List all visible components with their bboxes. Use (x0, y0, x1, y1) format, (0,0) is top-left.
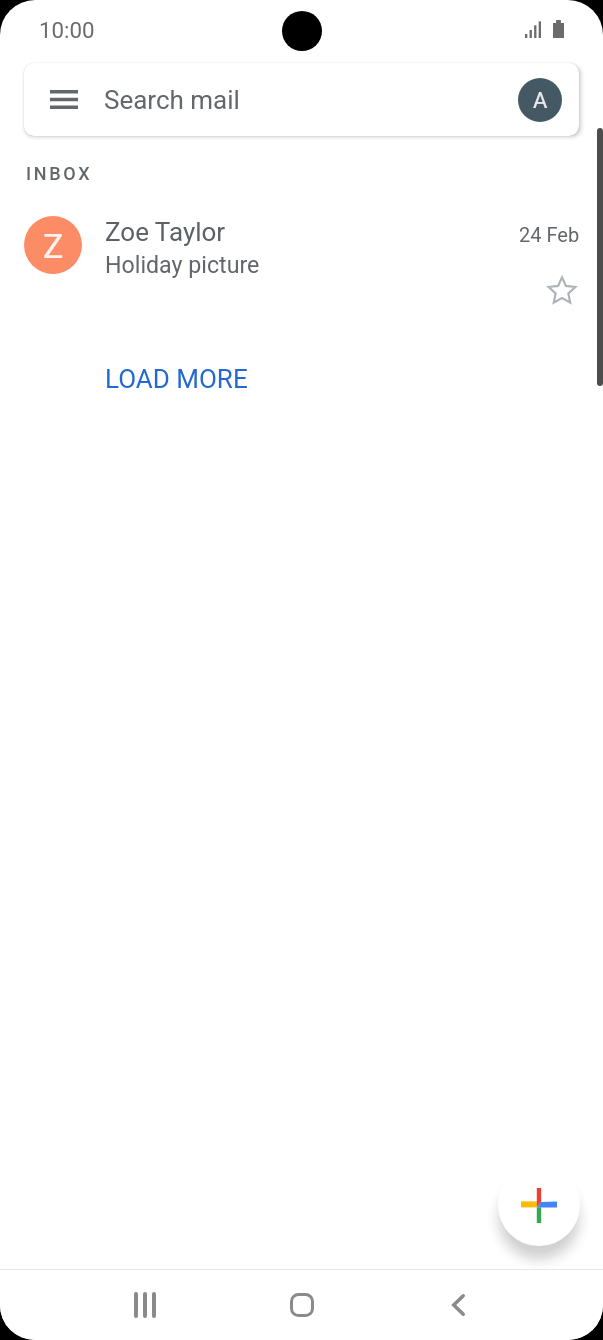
staticText: 10:00 (39, 17, 95, 43)
staticText: 24 Feb (519, 223, 580, 246)
button[interactable]: Account (518, 78, 562, 122)
button[interactable]: Open navigation menu (24, 63, 104, 136)
staticText: Zoe Taylor (105, 217, 226, 247)
staticText: A (533, 88, 548, 114)
button[interactable]: Compose (498, 1164, 580, 1246)
button[interactable]: Home (272, 1270, 332, 1340)
button[interactable]: Open navigation menu (24, 63, 579, 136)
staticText: LOAD MORE (105, 364, 248, 394)
button[interactable]: Recent apps (115, 1270, 175, 1340)
button[interactable]: Star (544, 272, 580, 308)
button[interactable]: Back (428, 1270, 488, 1340)
staticText: Holiday picture (105, 251, 260, 278)
staticText: INBOX (26, 163, 93, 184)
button[interactable]: LOAD MORE (89, 355, 263, 403)
staticText: Z (43, 226, 64, 266)
button[interactable]: Z (0, 202, 603, 314)
staticText: Search mail (104, 85, 240, 115)
